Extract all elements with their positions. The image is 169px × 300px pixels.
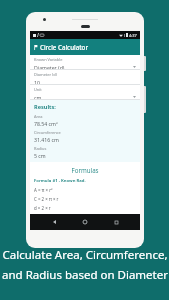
staticText: 78.54 cm² bbox=[34, 120, 58, 127]
staticText: Known Variable bbox=[34, 57, 63, 62]
staticText: Diameter (d) bbox=[34, 64, 65, 70]
button[interactable]: Known Variable bbox=[30, 55, 140, 70]
staticText: Circumference bbox=[34, 130, 61, 135]
staticText: 31.416 cm bbox=[34, 136, 59, 143]
staticText: 5 cm bbox=[34, 152, 46, 159]
button[interactable]: Back bbox=[47, 215, 61, 229]
staticText: cm bbox=[34, 94, 42, 100]
staticText: Formulas bbox=[34, 166, 136, 174]
staticText: Circle Calculator bbox=[40, 43, 88, 51]
staticText: Radius bbox=[34, 146, 47, 151]
staticText: Results: bbox=[34, 103, 56, 111]
staticText: 4:37 bbox=[129, 33, 137, 38]
staticText: Formula #1 - Known Rad. bbox=[34, 178, 86, 184]
staticText: Calculate Area, Circumference, bbox=[2, 247, 168, 263]
button[interactable]: Unit bbox=[30, 85, 140, 100]
staticText: C = 2 × π × r bbox=[34, 196, 59, 202]
staticText: Area bbox=[34, 114, 43, 119]
staticText: and Radius based on Diameter bbox=[2, 267, 168, 283]
staticText: Diameter (d) bbox=[34, 72, 57, 77]
staticText: A = π × r² bbox=[34, 187, 53, 193]
staticText: d = 2 × r bbox=[34, 205, 51, 211]
button[interactable]: Diameter (d) bbox=[30, 70, 140, 85]
button[interactable]: Home bbox=[78, 215, 92, 229]
staticText: 10 bbox=[34, 79, 40, 85]
button[interactable]: Recent apps bbox=[109, 215, 123, 229]
staticText: Unit bbox=[34, 87, 42, 92]
